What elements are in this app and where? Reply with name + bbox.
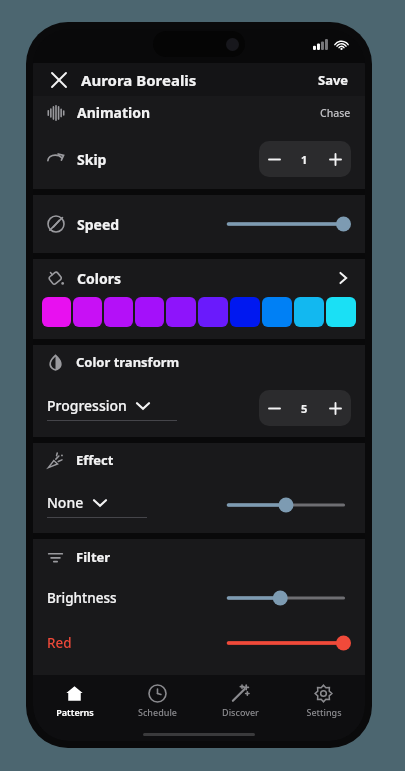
staticText: Brightness <box>47 589 117 607</box>
button[interactable]: Color swatch <box>135 297 164 327</box>
staticText: Aurora Borealis <box>81 70 197 90</box>
button[interactable]: Slider <box>221 493 351 517</box>
staticText: Settings <box>306 706 342 718</box>
button[interactable]: Slider <box>221 631 351 655</box>
button[interactable]: Save <box>316 67 351 93</box>
button[interactable]: Increase <box>320 390 351 426</box>
button[interactable]: Progression <box>47 396 177 421</box>
button[interactable]: None <box>47 493 147 518</box>
button[interactable]: Slider <box>221 586 351 610</box>
staticText: 1 <box>301 152 308 167</box>
button[interactable]: Speed <box>33 195 365 253</box>
staticText: 5 <box>301 401 308 416</box>
button[interactable]: Schedule <box>116 675 199 727</box>
button[interactable]: Color swatch <box>294 297 324 327</box>
staticText: Skip <box>77 150 107 169</box>
button[interactable]: Decrease <box>259 390 289 426</box>
button[interactable]: Color swatch <box>42 297 71 327</box>
button[interactable]: Color swatch <box>104 297 133 327</box>
button[interactable]: Decrease <box>259 141 289 177</box>
button[interactable]: Color swatch <box>230 297 260 327</box>
staticText: Save <box>318 71 349 89</box>
button[interactable]: Discover <box>199 675 282 727</box>
button[interactable]: Slider <box>221 212 351 236</box>
button[interactable]: Increase <box>320 141 351 177</box>
staticText: Effect <box>76 451 114 469</box>
staticText: Chase <box>320 106 351 120</box>
button[interactable]: Color swatch <box>326 297 356 327</box>
button[interactable]: Color swatch <box>198 297 228 327</box>
staticText: Animation <box>77 103 151 122</box>
button[interactable]: Color swatch <box>262 297 292 327</box>
staticText: Colors <box>77 269 121 288</box>
staticText: Red <box>47 634 72 652</box>
staticText: Patterns <box>56 706 94 718</box>
button[interactable]: Animation <box>33 96 365 129</box>
button[interactable]: Color swatch <box>166 297 196 327</box>
staticText: None <box>47 493 84 512</box>
staticText: Color transform <box>76 353 180 371</box>
staticText: Progression <box>47 396 127 415</box>
staticText: Discover <box>222 706 259 718</box>
button[interactable]: Patterns <box>33 675 116 727</box>
button[interactable]: Settings <box>282 675 365 727</box>
staticText: Filter <box>76 548 111 566</box>
button[interactable]: Colors <box>33 259 365 297</box>
staticText: Schedule <box>138 706 177 718</box>
button[interactable]: Color swatch <box>73 297 102 327</box>
staticText: Speed <box>77 215 120 234</box>
button[interactable]: Close <box>47 68 71 92</box>
